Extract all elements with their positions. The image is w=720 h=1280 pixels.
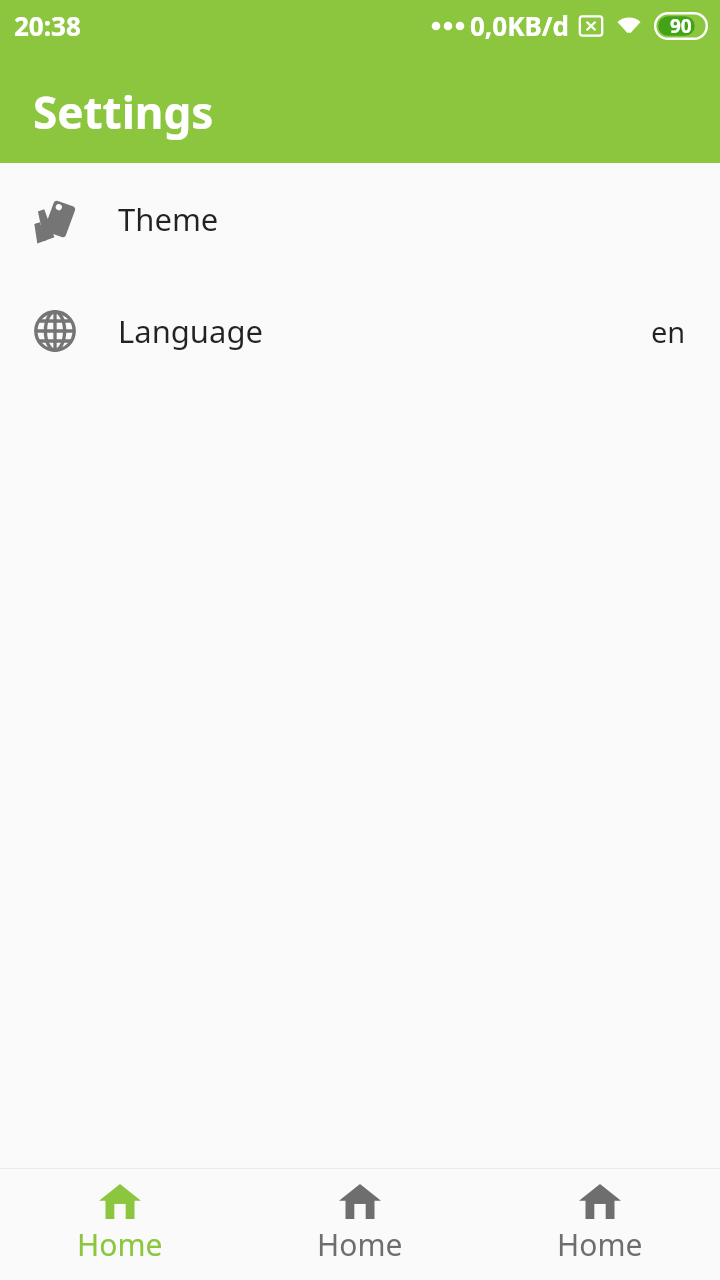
staticText: Home: [77, 1224, 163, 1265]
staticText: 90: [670, 13, 692, 39]
staticText: Settings: [33, 82, 214, 142]
staticText: en: [651, 312, 686, 351]
staticText: Theme: [118, 198, 219, 240]
button[interactable]: Home: [480, 1169, 720, 1280]
staticText: Language: [118, 310, 263, 352]
staticText: 0,0KB/d: [470, 8, 569, 43]
other: Language: [31, 307, 79, 355]
button[interactable]: Language: [0, 275, 720, 387]
button[interactable]: Home: [0, 1169, 240, 1280]
other: Theme: [31, 195, 79, 243]
staticText: 20:38: [14, 8, 81, 43]
staticText: Home: [317, 1224, 403, 1265]
button[interactable]: Home: [240, 1169, 480, 1280]
button[interactable]: Theme: [0, 163, 720, 275]
staticText: Home: [557, 1224, 643, 1265]
